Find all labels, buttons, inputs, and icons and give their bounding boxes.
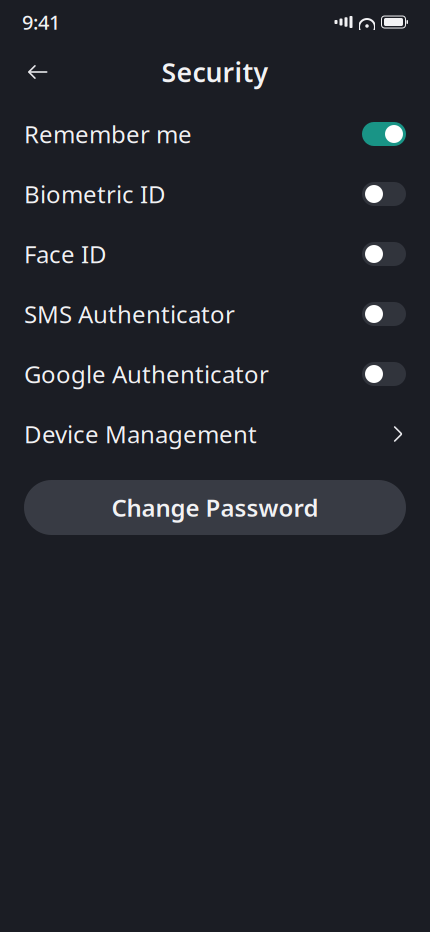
staticText: Remember me — [24, 118, 192, 150]
staticText: SMS Authenticator — [24, 298, 235, 330]
button[interactable]: Google Authenticator — [0, 344, 430, 404]
staticText: Security — [161, 54, 268, 90]
button[interactable]: Remember me — [0, 104, 430, 164]
staticText: Google Authenticator — [24, 358, 269, 390]
staticText: Face ID — [24, 238, 107, 270]
button[interactable]: Back — [16, 50, 60, 94]
button[interactable]: SMS Authenticator — [0, 284, 430, 344]
button[interactable]: Biometric ID — [0, 164, 430, 224]
button[interactable]: Change Password — [24, 480, 406, 535]
staticText: Change Password — [111, 492, 318, 523]
button[interactable]: Device Management — [0, 404, 430, 464]
staticText: Device Management — [24, 418, 257, 450]
staticText: 9:41 — [22, 9, 60, 35]
staticText: Biometric ID — [24, 178, 166, 210]
button[interactable]: Face ID — [0, 224, 430, 284]
